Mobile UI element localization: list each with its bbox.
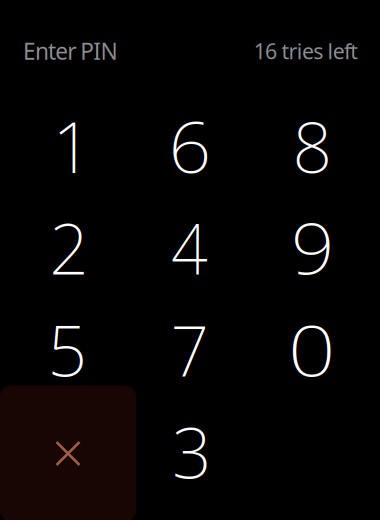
button[interactable]: 0 — [251, 299, 374, 400]
staticText: 2 — [49, 201, 89, 294]
staticText: 5 — [47, 304, 87, 396]
staticText: 9 — [293, 201, 333, 294]
button[interactable]: 2 — [5, 197, 128, 298]
staticText: 4 — [169, 201, 209, 294]
button[interactable]: 6 — [128, 95, 251, 196]
staticText: 0 — [292, 304, 332, 396]
button[interactable]: 9 — [251, 197, 374, 298]
staticText: 7 — [170, 304, 210, 396]
staticText: 6 — [170, 100, 210, 192]
button[interactable]: 8 — [251, 95, 374, 196]
staticText: 1 — [52, 100, 92, 192]
button[interactable]: 1 — [5, 95, 128, 196]
button[interactable]: 4 — [128, 197, 251, 298]
staticText: 8 — [292, 100, 332, 192]
button[interactable]: 7 — [128, 299, 251, 400]
staticText: Enter PIN — [23, 36, 117, 66]
button[interactable]: Delete — [0, 385, 136, 520]
button[interactable]: 5 — [5, 299, 128, 400]
staticText: 3 — [172, 405, 212, 498]
staticText: 16 tries left — [254, 37, 358, 65]
button[interactable]: 3 — [128, 401, 251, 502]
